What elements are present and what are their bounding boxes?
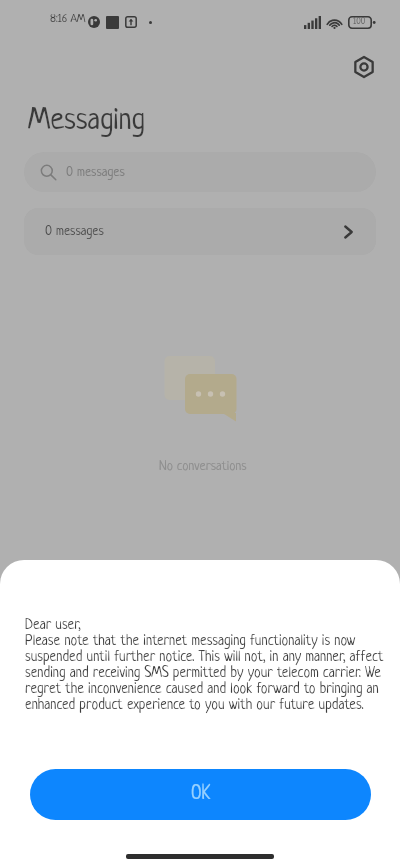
staticText: 0 messages [66, 165, 125, 180]
staticText: Dear user, Please note that the internet… [25, 617, 387, 713]
staticText: 0 messages [45, 224, 104, 239]
staticText: No conversations [159, 459, 247, 474]
staticText: 100 [353, 17, 366, 26]
staticText: OK [191, 784, 211, 805]
button[interactable]: 0 messages [24, 208, 376, 255]
staticText: Messaging [28, 105, 145, 138]
staticText: 8:16 AM [50, 13, 86, 26]
button[interactable]: Settings [349, 52, 378, 81]
button[interactable]: 0 messages [24, 152, 376, 192]
button[interactable]: OK [30, 769, 371, 820]
